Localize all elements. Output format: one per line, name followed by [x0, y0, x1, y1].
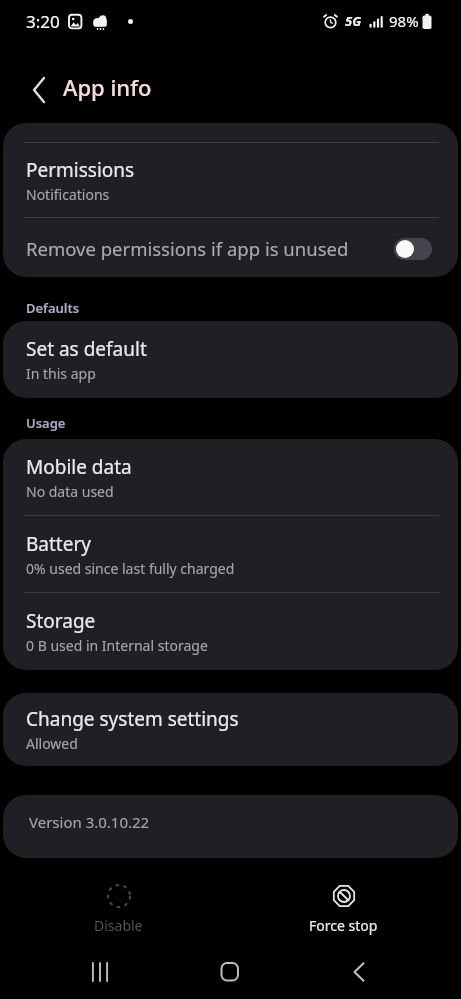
staticText: App info [63, 72, 152, 102]
button[interactable] [319, 945, 399, 999]
staticText: No data used [26, 482, 114, 501]
button[interactable]: Permissions [3, 143, 458, 217]
staticText: 3:20 [26, 10, 60, 33]
staticText: Disable [94, 916, 143, 935]
staticText: 5G [345, 12, 362, 30]
button[interactable] [394, 238, 432, 260]
button[interactable]: Storage [3, 593, 458, 670]
staticText: Set as default [26, 336, 147, 362]
staticText: 0% used since last fully charged [26, 559, 235, 578]
button[interactable]: Force stop [263, 858, 423, 945]
staticText: Permissions [26, 157, 135, 183]
staticText: Allowed [26, 734, 78, 753]
button[interactable]: Set as default [3, 321, 458, 398]
staticText: 0 B used in Internal storage [26, 636, 208, 655]
button[interactable] [60, 945, 140, 999]
button[interactable]: Battery [3, 516, 458, 592]
button[interactable]: Mobile data [3, 439, 458, 515]
staticText: Version 3.0.10.22 [29, 812, 150, 832]
staticText: In this app [26, 364, 96, 383]
staticText: Remove permissions if app is unused [26, 236, 349, 261]
button[interactable]: Change system settings [3, 693, 458, 766]
staticText: 98% [389, 11, 419, 31]
staticText: Storage [26, 608, 96, 634]
staticText: Defaults [26, 299, 80, 317]
staticText: Change system settings [26, 706, 239, 732]
staticText: Notifications [26, 185, 110, 204]
button[interactable] [190, 945, 270, 999]
button[interactable]: Remove permissions if app is unused [3, 218, 458, 277]
staticText: Force stop [309, 916, 378, 935]
staticText: Mobile data [26, 454, 132, 480]
button[interactable]: Disable [38, 858, 198, 945]
staticText: Battery [26, 531, 91, 557]
staticText: Usage [26, 414, 66, 432]
button[interactable] [15, 66, 63, 114]
